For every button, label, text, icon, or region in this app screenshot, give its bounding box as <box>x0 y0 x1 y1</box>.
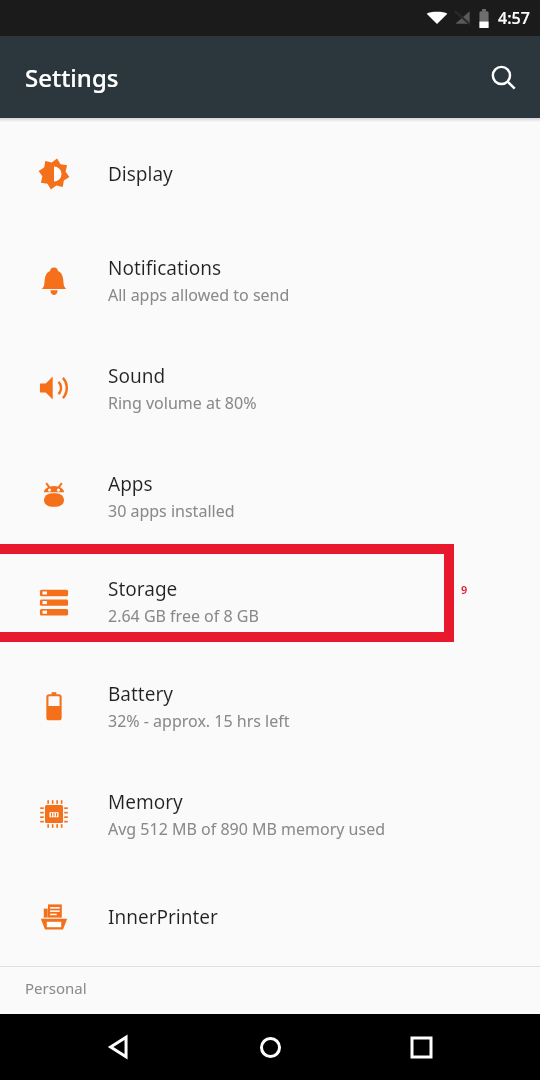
button[interactable]: Sound <box>0 334 540 442</box>
button[interactable]: Search <box>479 53 527 101</box>
button[interactable]: Battery <box>0 652 540 760</box>
button[interactable]: Home <box>238 1015 302 1079</box>
button[interactable]: Display <box>0 122 540 226</box>
staticText: 9 <box>461 582 468 597</box>
staticText: Storage <box>108 576 178 602</box>
staticText: 2.64 GB free of 8 GB <box>108 605 259 627</box>
button[interactable]: Storage <box>0 550 540 652</box>
button[interactable]: InnerPrinter <box>0 868 540 966</box>
button[interactable]: Apps <box>0 442 540 550</box>
staticText: Personal <box>25 978 87 998</box>
staticText: Notifications <box>108 255 222 281</box>
staticText: 30 apps installed <box>108 500 235 522</box>
staticText: Apps <box>108 471 153 497</box>
staticText: Battery <box>108 681 173 707</box>
staticText: InnerPrinter <box>108 904 218 930</box>
staticText: Memory <box>108 789 183 815</box>
staticText: Settings <box>25 61 119 94</box>
button[interactable]: Memory <box>0 760 540 868</box>
staticText: Display <box>108 161 173 187</box>
button[interactable]: Notifications <box>0 226 540 334</box>
button[interactable]: Back <box>87 1015 151 1079</box>
staticText: Ring volume at 80% <box>108 392 257 414</box>
staticText: Avg 512 MB of 890 MB memory used <box>108 818 386 840</box>
staticText: Sound <box>108 363 166 389</box>
staticText: 32% - approx. 15 hrs left <box>108 710 290 732</box>
staticText: 4:57 <box>498 7 530 29</box>
button[interactable]: Recent apps <box>389 1015 453 1079</box>
staticText: All apps allowed to send <box>108 284 290 306</box>
